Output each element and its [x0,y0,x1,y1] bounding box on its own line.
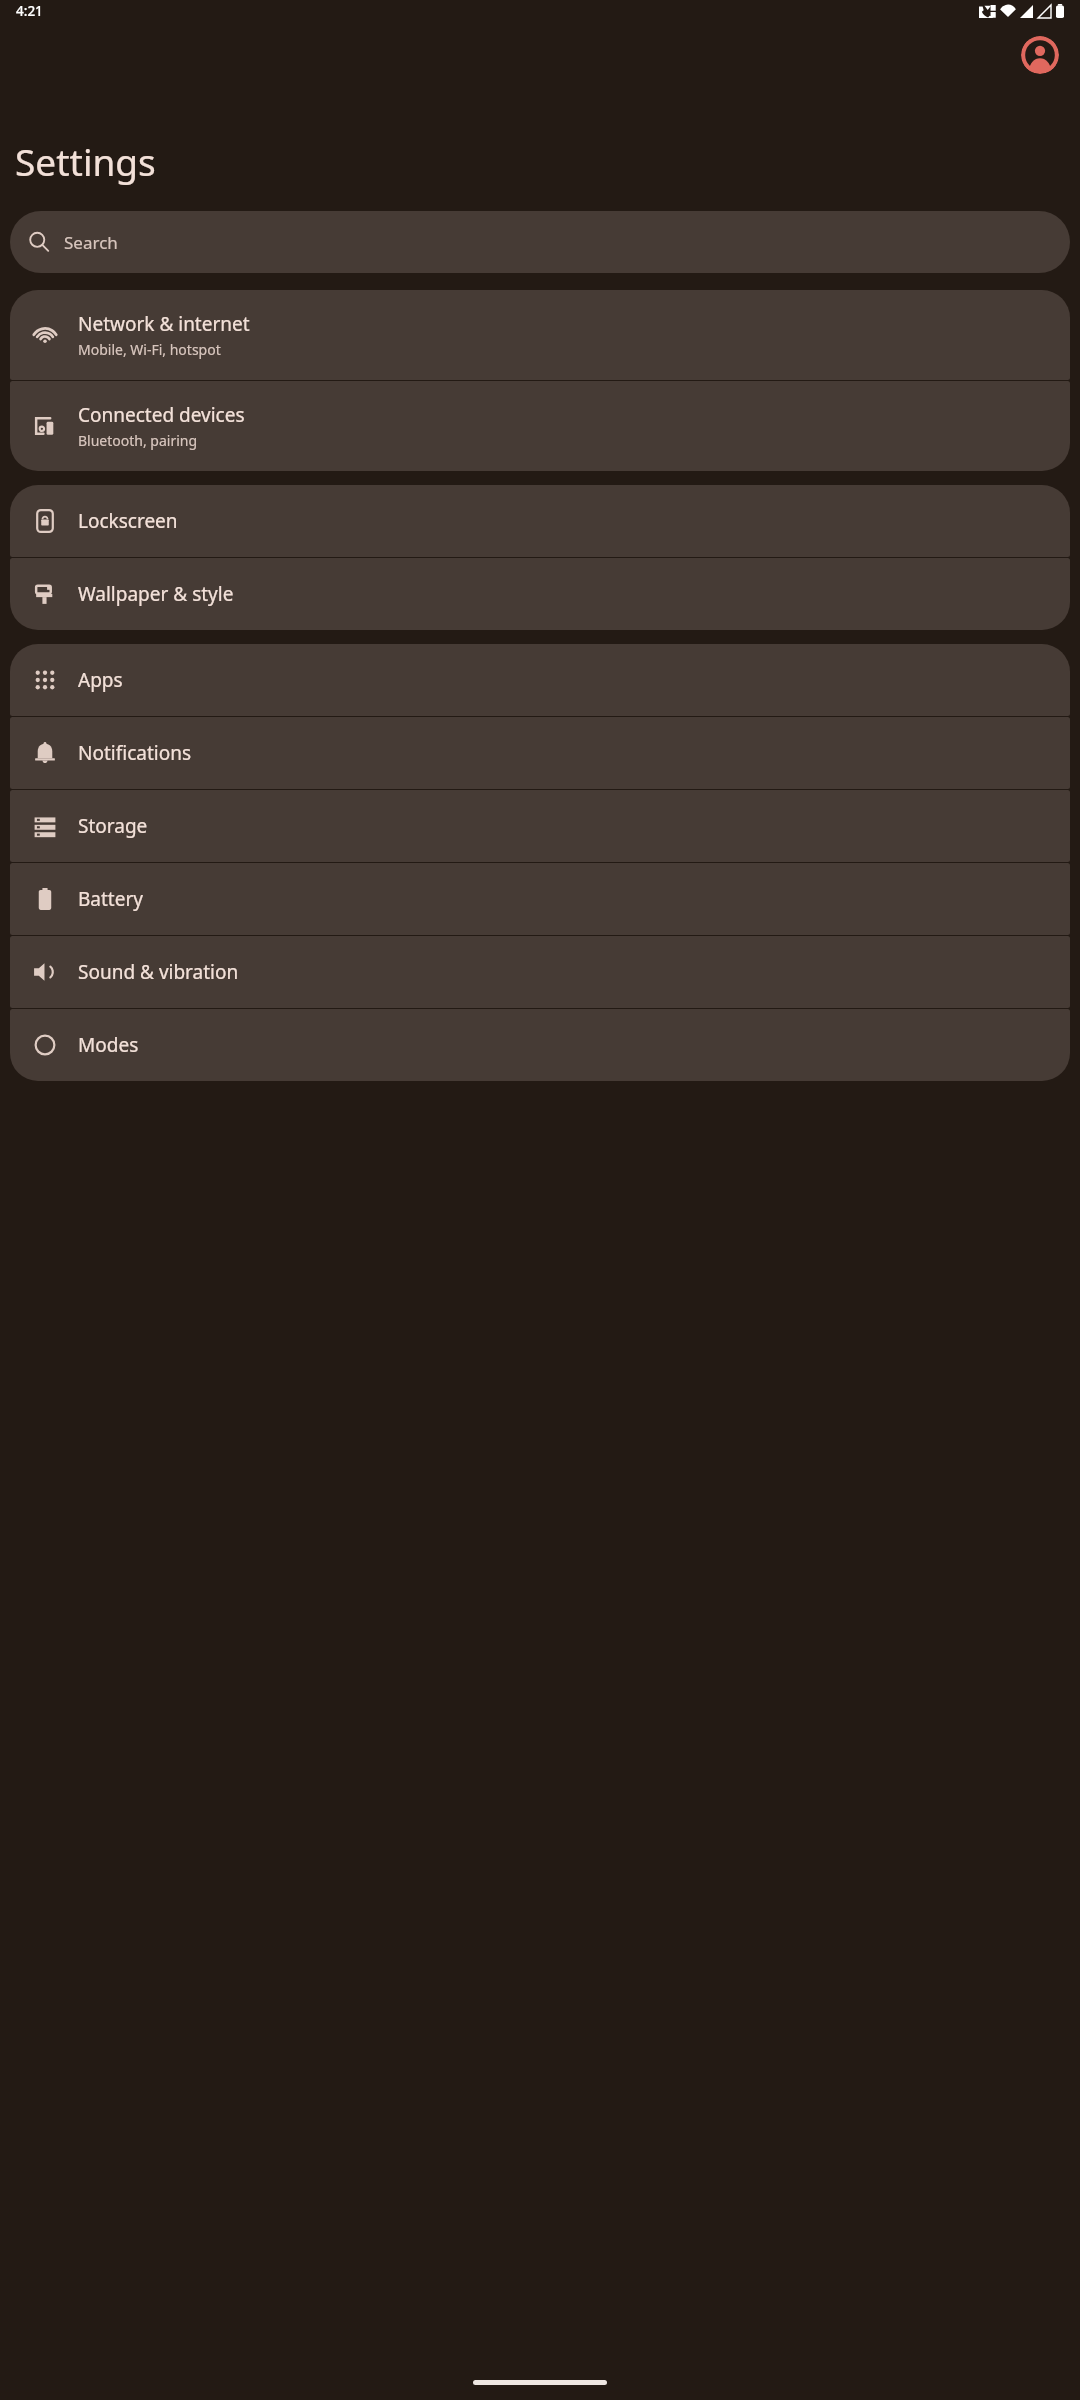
staticText: Mobile, Wi-Fi, hotspot [78,340,221,359]
button[interactable]: Sound & vibration [10,936,1070,1008]
staticText: Bluetooth, pairing [78,431,198,450]
staticText: Lockscreen [78,508,178,534]
staticText: Wallpaper & style [78,581,234,607]
staticText: Settings [15,136,156,186]
staticText: Search [64,231,118,254]
button[interactable]: Notifications [10,717,1070,789]
button[interactable]: Storage [10,790,1070,862]
staticText: Network & internet [78,311,250,337]
button[interactable]: Search [10,211,1070,273]
button[interactable]: Connected devices [10,381,1070,471]
button[interactable]: Battery [10,863,1070,935]
button[interactable]: Modes [10,1009,1070,1081]
staticText: Sound & vibration [78,959,239,985]
button[interactable]: Lockscreen [10,485,1070,557]
button[interactable]: Account [1021,36,1059,74]
staticText: Apps [78,667,123,693]
staticText: Battery [78,886,143,912]
staticText: Storage [78,813,148,839]
button[interactable]: Network & internet [10,290,1070,380]
staticText: Connected devices [78,402,245,428]
button[interactable]: Apps [10,644,1070,716]
staticText: 4:21 [16,2,43,20]
staticText: Notifications [78,740,192,766]
staticText: Modes [78,1032,139,1058]
button[interactable]: Wallpaper & style [10,558,1070,630]
